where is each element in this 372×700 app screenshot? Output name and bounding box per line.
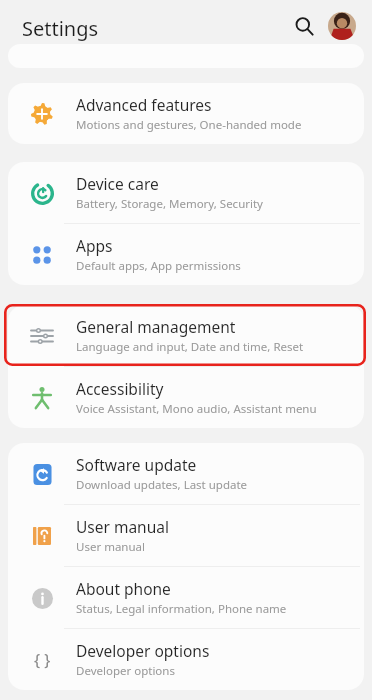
- staticText: About phone: [76, 578, 171, 599]
- staticText: Battery, Storage, Memory, Security: [76, 196, 263, 212]
- button[interactable]: About phone: [8, 567, 364, 628]
- staticText: Advanced features: [76, 94, 212, 115]
- button[interactable]: Account: [328, 12, 356, 40]
- button[interactable]: Apps: [8, 224, 364, 285]
- staticText: Motions and gestures, One-handed mode: [76, 117, 302, 133]
- button[interactable]: { }: [8, 629, 364, 690]
- button[interactable]: General management: [8, 305, 364, 366]
- button[interactable]: Advanced features: [8, 83, 364, 144]
- staticText: User manual: [76, 539, 145, 555]
- staticText: Apps: [76, 235, 113, 256]
- staticText: Software update: [76, 454, 197, 475]
- staticText: General management: [76, 316, 236, 337]
- staticText: Accessibility: [76, 378, 164, 399]
- staticText: Default apps, App permissions: [76, 258, 241, 274]
- staticText: Language and input, Date and time, Reset: [76, 339, 304, 355]
- staticText: Device care: [76, 173, 159, 194]
- button[interactable]: Search: [288, 10, 320, 42]
- staticText: { }: [34, 649, 51, 671]
- staticText: User manual: [76, 516, 169, 537]
- staticText: Status, Legal information, Phone name: [76, 601, 287, 617]
- staticText: Download updates, Last update: [76, 477, 248, 493]
- staticText: Developer options: [76, 663, 175, 679]
- button[interactable]: Software update: [8, 443, 364, 504]
- button[interactable]: Accessibility: [8, 367, 364, 428]
- staticText: Voice Assistant, Mono audio, Assistant m…: [76, 401, 317, 417]
- staticText: Settings: [22, 15, 99, 42]
- staticText: Developer options: [76, 640, 210, 661]
- button[interactable]: User manual: [8, 505, 364, 566]
- button[interactable]: Device care: [8, 162, 364, 223]
